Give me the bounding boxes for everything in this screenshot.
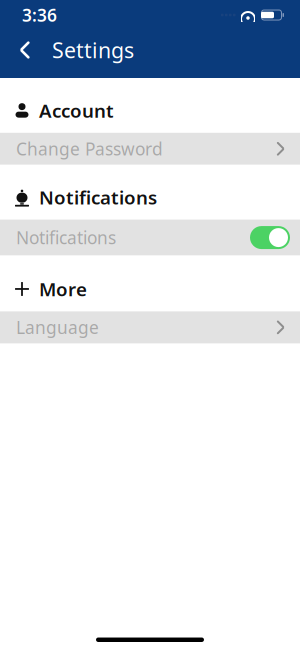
staticText: Settings [52,36,134,64]
button[interactable]: Back [12,35,38,65]
button[interactable]: Change Password [0,133,300,165]
button[interactable]: Notifications [0,220,300,256]
staticText: Notifications [39,185,157,210]
staticText: Notifications [16,226,116,249]
button[interactable]: Language [0,311,300,343]
staticText: Language [16,316,99,339]
staticText: 3:36 [22,3,57,26]
staticText: Account [39,98,114,123]
staticText: More [39,277,87,301]
staticText: Change Password [16,137,163,160]
